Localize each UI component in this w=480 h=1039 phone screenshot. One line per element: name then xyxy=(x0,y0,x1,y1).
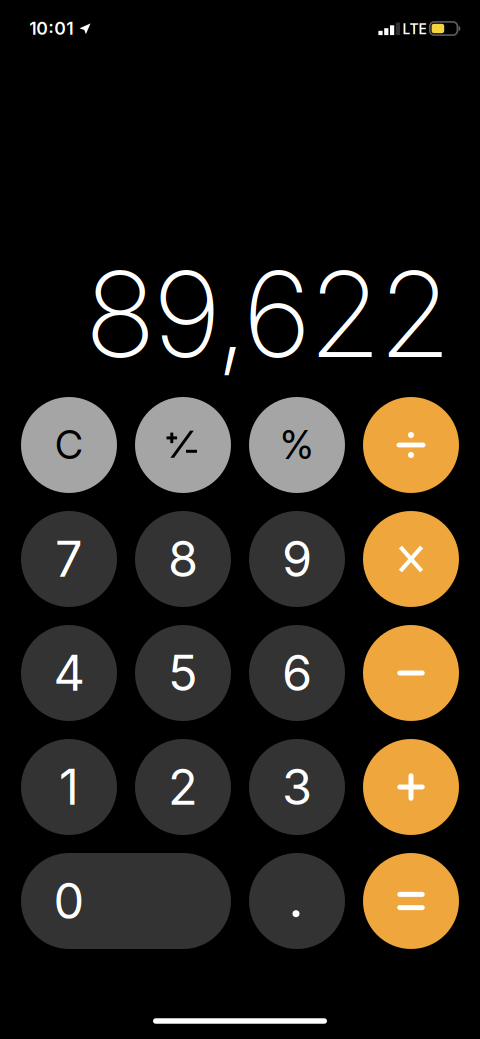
staticText: 5 xyxy=(168,644,198,702)
button[interactable]: 0 xyxy=(21,853,231,949)
button[interactable]: 2 xyxy=(135,739,231,835)
button[interactable]: 1 xyxy=(21,739,117,835)
button[interactable]: Multiply xyxy=(363,511,459,607)
button[interactable]: 6 xyxy=(249,625,345,721)
button[interactable]: Equals xyxy=(363,853,459,949)
staticText: 1 xyxy=(59,758,79,816)
staticText: 10:01 xyxy=(29,18,73,39)
staticText: 9 xyxy=(282,530,312,588)
button[interactable]: 4 xyxy=(21,625,117,721)
button[interactable]: 7 xyxy=(21,511,117,607)
button[interactable]: Divide xyxy=(363,397,459,493)
staticText: C xyxy=(55,422,83,468)
button[interactable]: 8 xyxy=(135,511,231,607)
button[interactable]: 3 xyxy=(249,739,345,835)
staticText: 89,622 xyxy=(84,242,451,386)
button[interactable]: Minus xyxy=(363,625,459,721)
button[interactable]: 9 xyxy=(249,511,345,607)
button[interactable]: 5 xyxy=(135,625,231,721)
button[interactable]: Decimal point xyxy=(249,853,345,949)
staticText: 7 xyxy=(55,530,83,588)
staticText: % xyxy=(280,422,314,468)
staticText: 0 xyxy=(53,872,84,930)
button[interactable]: C xyxy=(21,397,117,493)
staticText: 3 xyxy=(282,758,312,816)
staticText: 4 xyxy=(53,644,84,702)
button[interactable]: % xyxy=(249,397,345,493)
button[interactable]: Plus Minus xyxy=(135,397,231,493)
staticText: 6 xyxy=(282,644,312,702)
staticText: 2 xyxy=(168,758,198,816)
staticText: 8 xyxy=(168,530,198,588)
staticText: LTE xyxy=(403,21,427,38)
button[interactable]: Plus xyxy=(363,739,459,835)
